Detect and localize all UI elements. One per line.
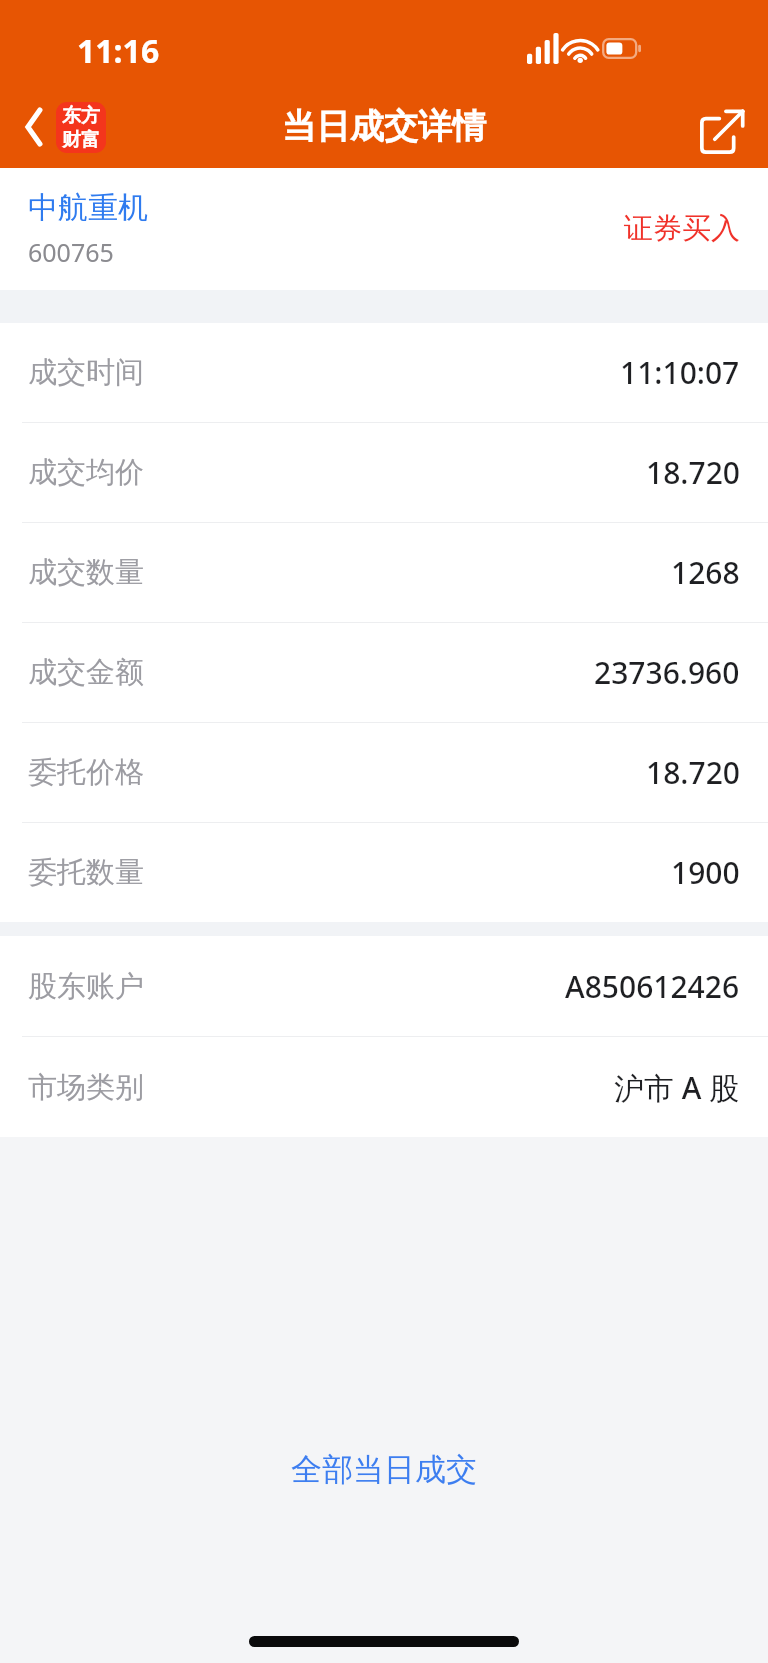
button[interactable]: 委托数量	[0, 823, 768, 922]
button[interactable]: 全部当日成交	[267, 1440, 501, 1499]
staticText: 600765	[28, 235, 114, 269]
button[interactable]: 委托价格	[0, 723, 768, 822]
staticText: 市场类别	[28, 1069, 144, 1106]
staticText: 沪市 A 股	[614, 1067, 740, 1108]
staticText: 成交时间	[28, 354, 144, 391]
staticText: 成交金额	[28, 654, 144, 691]
staticText: 委托数量	[28, 854, 144, 891]
staticText: 1900	[671, 852, 740, 893]
staticText: 股东账户	[28, 968, 144, 1005]
button[interactable]: 市场类别	[0, 1037, 768, 1137]
staticText: 财富	[62, 128, 100, 152]
staticText: 23736.960	[594, 652, 740, 693]
staticText: 东方	[62, 104, 100, 128]
staticText: 全部当日成交	[291, 1450, 477, 1489]
staticText: 当日成交详情	[282, 105, 486, 148]
button[interactable]: 股东账户	[0, 936, 768, 1036]
button[interactable]: Share	[688, 97, 756, 165]
staticText: 证券买入	[624, 210, 740, 247]
button[interactable]: East Money logo	[56, 102, 106, 153]
staticText: 中航重机	[28, 189, 148, 227]
staticText: 1268	[671, 552, 740, 593]
staticText: 18.720	[646, 752, 740, 793]
button[interactable]: 中航重机	[0, 168, 768, 290]
staticText: A850612426	[565, 966, 740, 1007]
button[interactable]: 成交金额	[0, 623, 768, 722]
staticText: 11:10:07	[620, 352, 740, 393]
button[interactable]: 成交均价	[0, 423, 768, 522]
staticText: 11:16	[77, 29, 160, 73]
staticText: 委托价格	[28, 754, 144, 791]
staticText: 成交数量	[28, 554, 144, 591]
button[interactable]: 成交数量	[0, 523, 768, 622]
staticText: 成交均价	[28, 454, 144, 491]
button[interactable]: 成交时间	[0, 323, 768, 422]
button[interactable]: Back	[2, 95, 60, 159]
staticText: 18.720	[646, 452, 740, 493]
